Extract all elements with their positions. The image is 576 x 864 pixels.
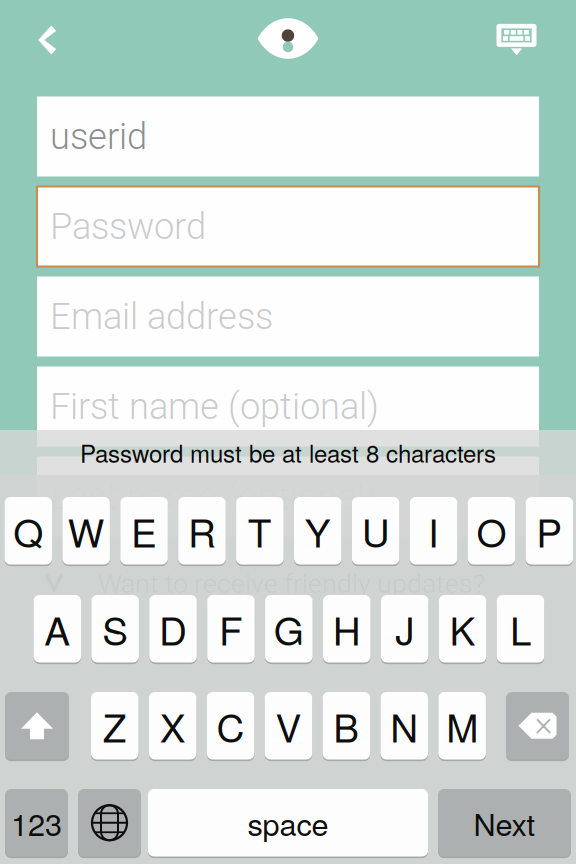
staticText: U bbox=[362, 503, 390, 558]
button[interactable]: A bbox=[33, 595, 81, 662]
staticText: K bbox=[449, 601, 475, 656]
staticText: G bbox=[274, 601, 304, 656]
button[interactable]: Next keyboard bbox=[78, 789, 141, 856]
staticText: F bbox=[219, 601, 243, 656]
staticText: R bbox=[188, 503, 216, 558]
staticText: C bbox=[217, 698, 245, 753]
button[interactable]: F bbox=[207, 595, 255, 662]
button[interactable]: Next bbox=[438, 789, 571, 856]
button[interactable]: Back bbox=[26, 13, 68, 66]
button[interactable]: Shift bbox=[5, 692, 69, 759]
button[interactable]: Y bbox=[294, 497, 341, 564]
staticText: 123 bbox=[11, 801, 62, 845]
button[interactable]: Show password bbox=[247, 10, 328, 66]
staticText: J bbox=[395, 601, 414, 656]
button[interactable]: Delete bbox=[506, 692, 569, 759]
button[interactable]: E bbox=[120, 497, 168, 564]
button[interactable]: P bbox=[526, 497, 573, 564]
button[interactable]: 123 bbox=[5, 789, 68, 856]
staticText: P bbox=[536, 503, 562, 558]
staticText: L bbox=[510, 601, 531, 656]
staticText: × bbox=[534, 703, 552, 744]
button[interactable]: V bbox=[265, 692, 312, 759]
staticText: First name (optional) bbox=[50, 385, 379, 428]
button[interactable]: S bbox=[91, 595, 139, 662]
staticText: Next bbox=[473, 801, 535, 845]
staticText: S bbox=[102, 601, 128, 656]
button[interactable]: M bbox=[438, 692, 486, 759]
staticText: userid bbox=[50, 115, 147, 158]
button[interactable]: O bbox=[468, 497, 515, 564]
button[interactable]: Hide keyboard bbox=[486, 14, 546, 65]
staticText: space bbox=[247, 801, 328, 845]
button[interactable]: B bbox=[323, 692, 370, 759]
button[interactable]: N bbox=[380, 692, 428, 759]
staticText: M bbox=[446, 698, 478, 753]
staticText: I bbox=[428, 503, 439, 558]
button[interactable]: First name (optional) bbox=[37, 366, 539, 446]
staticText: T bbox=[248, 503, 272, 558]
staticText: Want to receive friendly updates? bbox=[98, 568, 485, 599]
staticText: H bbox=[333, 601, 361, 656]
staticText: E bbox=[131, 503, 157, 558]
button[interactable]: G bbox=[265, 595, 313, 662]
staticText: Password bbox=[50, 205, 206, 248]
button[interactable]: R bbox=[178, 497, 226, 564]
staticText: Email address bbox=[50, 295, 273, 338]
staticText: X bbox=[160, 698, 186, 753]
staticText: Last name (optional) bbox=[50, 475, 377, 518]
button[interactable]: userid bbox=[37, 96, 539, 176]
button[interactable]: space bbox=[148, 789, 428, 856]
button[interactable]: Z bbox=[91, 692, 138, 759]
button[interactable]: Last name (optional) bbox=[37, 456, 539, 536]
button[interactable]: D bbox=[149, 595, 197, 662]
staticText: D bbox=[159, 601, 187, 656]
button[interactable]: W bbox=[62, 497, 110, 564]
staticText: W bbox=[68, 503, 105, 558]
staticText: Z bbox=[103, 698, 127, 753]
button[interactable]: I bbox=[410, 497, 457, 564]
staticText: V bbox=[275, 698, 301, 753]
staticText: N bbox=[390, 698, 418, 753]
staticText: O bbox=[476, 503, 506, 558]
staticText: Q bbox=[13, 503, 43, 558]
button[interactable]: H bbox=[323, 595, 370, 662]
button[interactable]: U bbox=[352, 497, 399, 564]
button[interactable]: C bbox=[207, 692, 254, 759]
button[interactable]: X bbox=[149, 692, 196, 759]
button[interactable]: Q bbox=[4, 497, 52, 564]
staticText: B bbox=[333, 698, 359, 753]
button[interactable]: L bbox=[497, 595, 544, 662]
button[interactable]: Email address bbox=[37, 276, 539, 356]
staticText: A bbox=[44, 601, 70, 656]
button[interactable]: J bbox=[381, 595, 428, 662]
staticText: Y bbox=[305, 503, 331, 558]
button[interactable]: K bbox=[439, 595, 486, 662]
button[interactable]: T bbox=[236, 497, 284, 564]
button[interactable]: Password bbox=[37, 186, 539, 266]
staticText: Password must be at least 8 characters bbox=[80, 435, 496, 470]
